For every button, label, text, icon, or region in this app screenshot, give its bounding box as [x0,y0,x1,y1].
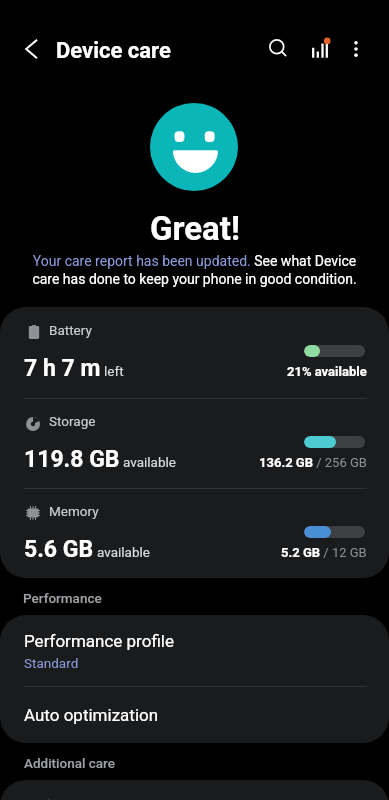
button[interactable]: Performance profile [0,615,389,686]
staticText: Performance profile [24,631,174,651]
staticText: Auto optimization [24,705,159,725]
staticText: 5.2 GB / 12 GB [281,545,367,560]
staticText: 21% available [287,364,367,379]
button[interactable]: Search [258,28,298,68]
staticText: left [104,363,124,379]
button[interactable]: Battery [0,307,389,397]
staticText: Standard [24,655,79,671]
staticText: Memory [49,503,99,519]
staticText: available [97,544,150,560]
button[interactable]: Memory [0,488,389,578]
staticText: Your care report has been updated. See w… [28,253,361,287]
button[interactable]: Software update [0,780,389,800]
button[interactable]: Diagnostics [300,28,340,68]
staticText: 136.2 GB / 256 GB [259,455,367,470]
staticText: Additional care [24,755,115,771]
staticText: available [123,454,176,470]
staticText: 5.6 GB [24,536,94,563]
staticText: Great! [150,209,240,248]
button[interactable]: Auto optimization [0,686,389,743]
staticText: Device care [56,38,171,64]
staticText: Battery [49,322,92,338]
button[interactable]: Navigate up [11,29,51,69]
staticText: 7 h 7 m [24,355,101,382]
staticText: Performance [23,590,102,606]
staticText: 119.8 GB [24,446,120,473]
staticText: Storage [49,413,96,429]
button[interactable]: Storage [0,398,389,488]
button[interactable]: More options [336,29,376,69]
